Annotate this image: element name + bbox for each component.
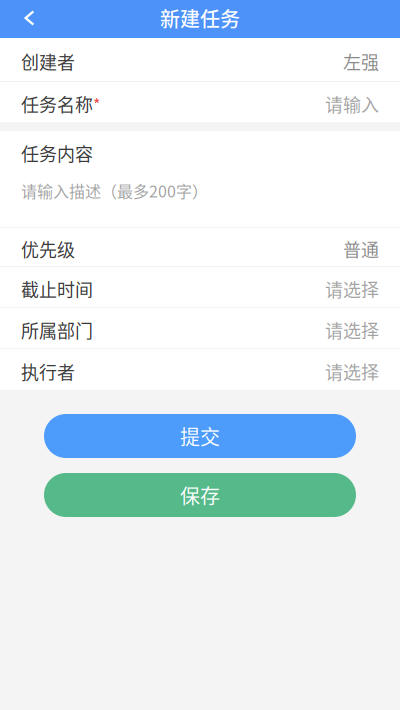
- staticText: 优先级: [21, 236, 75, 262]
- staticText: 创建者: [21, 48, 75, 75]
- button[interactable]: 任务内容: [0, 131, 400, 227]
- button[interactable]: 所属部门: [0, 308, 400, 349]
- staticText: *: [93, 92, 100, 116]
- staticText: 请选择: [325, 317, 379, 343]
- staticText: 保存: [180, 480, 220, 509]
- staticText: 请选择: [325, 276, 379, 302]
- staticText: 新建任务: [160, 3, 240, 32]
- staticText: 截止时间: [21, 276, 93, 302]
- staticText: 普通: [343, 236, 379, 262]
- staticText: 请选择: [325, 358, 379, 385]
- button[interactable]: Back: [0, 0, 59, 38]
- button[interactable]: 保存: [0, 473, 400, 517]
- staticText: 所属部门: [21, 317, 93, 343]
- staticText: 执行者: [21, 358, 75, 385]
- staticText: 请输入: [325, 91, 379, 117]
- button[interactable]: 创建者: [0, 38, 400, 82]
- staticText: 请输入描述（最多200字）: [21, 179, 208, 202]
- button[interactable]: 优先级: [0, 228, 400, 267]
- staticText: 任务内容: [21, 140, 93, 166]
- button[interactable]: 提交: [0, 414, 400, 458]
- button[interactable]: 执行者: [0, 349, 400, 390]
- button[interactable]: 截止时间: [0, 267, 400, 308]
- staticText: 任务名称: [21, 91, 93, 117]
- button[interactable]: 任务名称: [0, 82, 400, 122]
- staticText: 提交: [180, 421, 220, 450]
- staticText: 左强: [343, 48, 379, 75]
